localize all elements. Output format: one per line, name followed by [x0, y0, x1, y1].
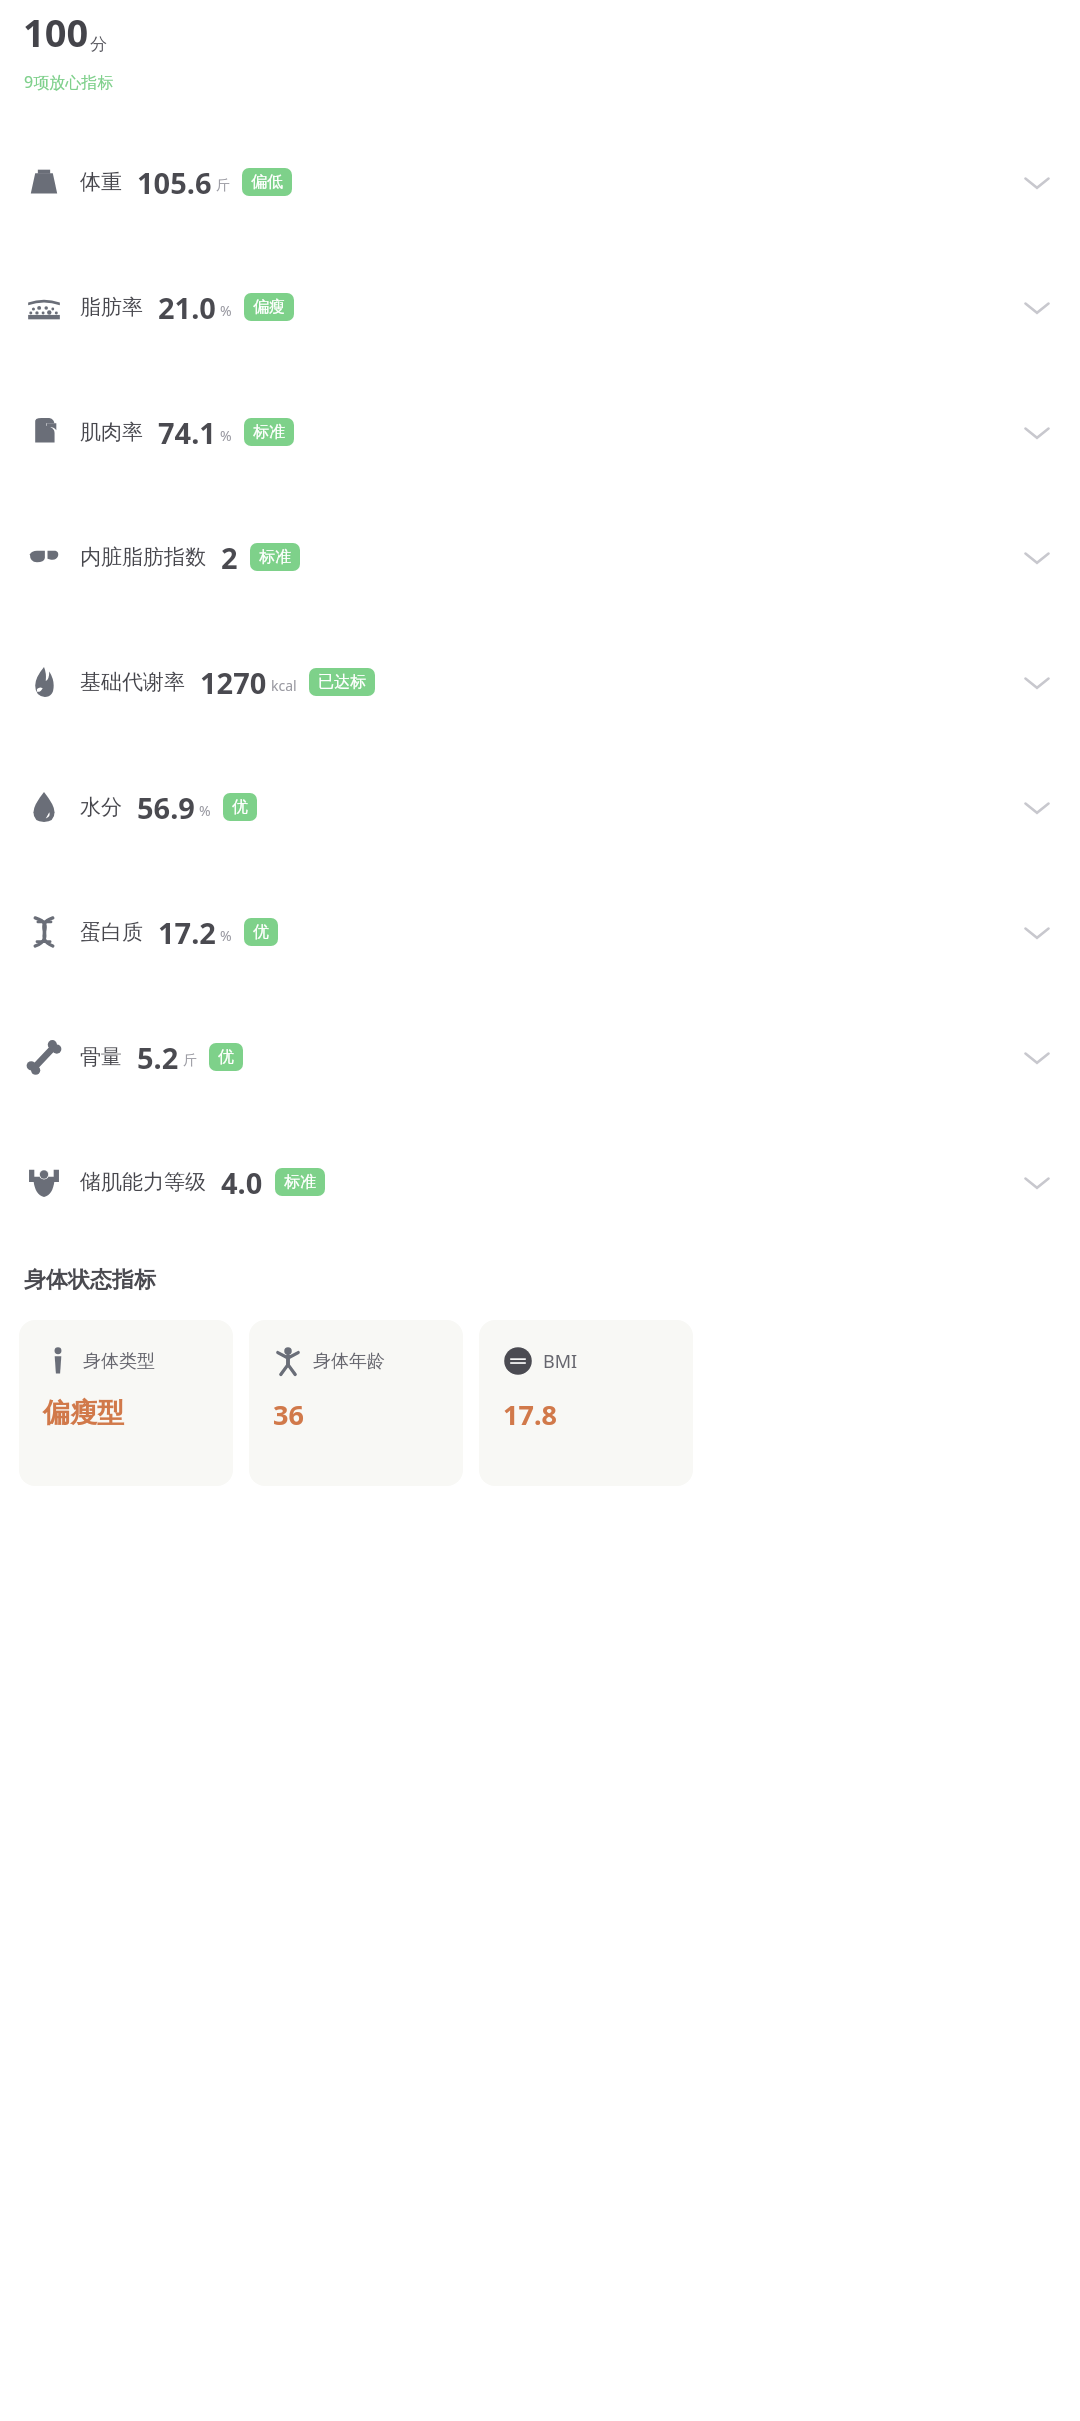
staticText: 偏低 — [251, 172, 283, 192]
staticText: kcal — [271, 676, 297, 695]
staticText: 身体状态指标 — [24, 1266, 156, 1294]
staticText: 4.0 — [221, 1163, 263, 1202]
staticText: 5.2 — [137, 1038, 179, 1077]
staticText: 内脏脂肪指数 — [80, 544, 206, 570]
other: 展开 蛋白质 — [1020, 915, 1054, 949]
other: 展开 体重 — [1020, 165, 1054, 199]
staticText: 74.1 — [158, 413, 216, 452]
staticText: 基础代谢率 — [80, 669, 185, 695]
staticText: 储肌能力等级 — [80, 1169, 206, 1195]
staticText: 分 — [90, 34, 107, 55]
button[interactable]: 身体类型 — [19, 1320, 233, 1486]
staticText: 优 — [232, 797, 248, 817]
staticText: 优 — [253, 922, 269, 942]
staticText: 斤 — [183, 1052, 197, 1070]
staticText: 身体年龄 — [313, 1350, 385, 1373]
staticText: 100 — [23, 6, 89, 58]
staticText: 56.9 — [137, 788, 195, 827]
other: 展开 脂肪率 — [1020, 290, 1054, 324]
staticText: 优 — [218, 1047, 234, 1067]
staticText: 斤 — [216, 177, 230, 195]
staticText: 2 — [221, 538, 238, 577]
staticText: 体重 — [80, 169, 122, 195]
other: 展开 骨量 — [1020, 1040, 1054, 1074]
staticText: 标准 — [284, 1172, 316, 1192]
staticText: 脂肪率 — [80, 294, 143, 320]
staticText: 1270 — [200, 663, 267, 702]
staticText: 标准 — [259, 547, 291, 567]
staticText: 身体类型 — [83, 1350, 155, 1373]
staticText: 17.8 — [503, 1396, 557, 1433]
other: 展开 水分 — [1020, 790, 1054, 824]
button[interactable]: 骨量 — [0, 994, 1080, 1119]
staticText: BMI — [543, 1349, 578, 1374]
staticText: % — [220, 926, 232, 945]
other: 展开 储肌能力等级 — [1020, 1165, 1054, 1199]
button[interactable]: 基础代谢率 — [0, 619, 1080, 744]
staticText: 肌肉率 — [80, 419, 143, 445]
button[interactable]: BMI — [479, 1320, 693, 1486]
button[interactable]: 储肌能力等级 — [0, 1119, 1080, 1244]
button[interactable]: 内脏脂肪指数 — [0, 494, 1080, 619]
staticText: 已达标 — [318, 672, 366, 692]
staticText: 蛋白质 — [80, 919, 143, 945]
other: 展开 内脏脂肪指数 — [1020, 540, 1054, 574]
other: 展开 肌肉率 — [1020, 415, 1054, 449]
staticText: % — [199, 801, 211, 820]
staticText: 骨量 — [80, 1044, 122, 1070]
staticText: % — [220, 301, 232, 320]
staticText: 偏瘦型 — [43, 1396, 124, 1430]
button[interactable]: 肌肉率 — [0, 369, 1080, 494]
staticText: 21.0 — [158, 288, 216, 327]
button[interactable]: 身体年龄 — [249, 1320, 463, 1486]
staticText: 标准 — [253, 422, 285, 442]
button[interactable]: 脂肪率 — [0, 244, 1080, 369]
staticText: 水分 — [80, 794, 122, 820]
staticText: 36 — [273, 1396, 304, 1433]
staticText: 9项放心指标 — [24, 71, 114, 93]
staticText: 17.2 — [158, 913, 216, 952]
button[interactable]: 体重 — [0, 119, 1080, 244]
other: 展开 基础代谢率 — [1020, 665, 1054, 699]
staticText: 105.6 — [137, 163, 212, 202]
button[interactable]: 蛋白质 — [0, 869, 1080, 994]
staticText: 偏瘦 — [253, 297, 285, 317]
button[interactable]: 水分 — [0, 744, 1080, 869]
staticText: % — [220, 426, 232, 445]
